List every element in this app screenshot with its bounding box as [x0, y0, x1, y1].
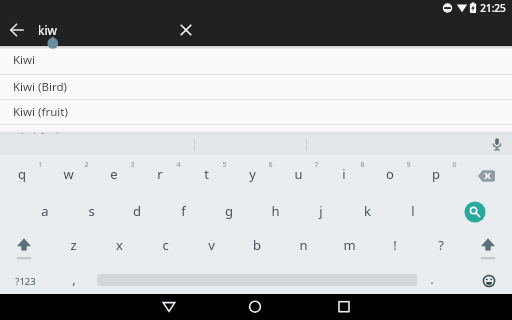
button[interactable]: [4, 17, 30, 43]
button[interactable]: [479, 271, 499, 291]
button[interactable]: [331, 294, 357, 320]
button[interactable]: q: [0, 162, 52, 186]
staticText: v: [208, 236, 215, 254]
button[interactable]: [242, 294, 268, 320]
staticText: h: [271, 202, 280, 220]
staticText: ?123: [15, 275, 36, 288]
button[interactable]: ?123: [0, 269, 55, 293]
staticText: Kiwi: [13, 52, 36, 68]
staticText: k: [364, 202, 371, 220]
button[interactable]: [468, 163, 504, 187]
button[interactable]: z: [43, 233, 103, 257]
staticText: Kiwi (Bird): [13, 79, 68, 95]
staticText: c: [162, 236, 169, 254]
staticText: s: [88, 202, 95, 220]
button[interactable]: r: [130, 162, 190, 186]
button[interactable]: [156, 294, 182, 320]
staticText: q: [18, 165, 26, 183]
button[interactable]: y: [222, 162, 282, 186]
button[interactable]: e: [84, 162, 144, 186]
staticText: p: [432, 165, 440, 183]
staticText: 3: [130, 160, 135, 170]
button[interactable]: c: [135, 233, 195, 257]
staticText: u: [294, 165, 303, 183]
button[interactable]: n: [273, 233, 333, 257]
button[interactable]: u: [268, 162, 328, 186]
staticText: 1: [38, 160, 43, 170]
staticText: 5: [222, 160, 227, 170]
button[interactable]: j: [291, 199, 351, 223]
button[interactable]: [463, 200, 487, 224]
staticText: 9: [406, 160, 411, 170]
staticText: .: [430, 270, 434, 288]
staticText: j: [319, 202, 323, 220]
button[interactable]: l: [383, 199, 443, 223]
button[interactable]: w: [38, 162, 98, 186]
button[interactable]: k: [337, 199, 397, 223]
staticText: e: [110, 165, 118, 183]
staticText: ,: [72, 270, 76, 288]
button[interactable]: t: [176, 162, 236, 186]
staticText: ?: [438, 236, 444, 254]
button[interactable]: a: [15, 199, 75, 223]
staticText: o: [386, 165, 394, 183]
staticText: y: [249, 165, 256, 183]
staticText: kiw: [38, 22, 57, 38]
staticText: x: [116, 236, 123, 254]
button[interactable]: b: [227, 233, 287, 257]
staticText: Kiwi (fruit): [13, 104, 68, 120]
staticText: t: [204, 165, 209, 183]
button[interactable]: o: [360, 162, 420, 186]
button[interactable]: h: [245, 199, 305, 223]
button[interactable]: ,: [44, 267, 104, 291]
staticText: 2: [84, 160, 89, 170]
staticText: Kiwi fruit: [13, 130, 64, 146]
staticText: 6: [268, 160, 273, 170]
staticText: 8: [360, 160, 365, 170]
button[interactable]: [0, 74, 512, 99]
button[interactable]: [11, 233, 37, 263]
staticText: w: [63, 165, 74, 183]
staticText: z: [70, 236, 77, 254]
staticText: 4: [176, 160, 181, 170]
staticText: l: [411, 202, 415, 220]
button[interactable]: .: [402, 267, 462, 291]
button[interactable]: [0, 99, 512, 124]
staticText: 7: [314, 160, 319, 170]
button[interactable]: [475, 233, 501, 263]
button[interactable]: d: [107, 199, 167, 223]
staticText: d: [133, 202, 141, 220]
staticText: f: [181, 202, 186, 220]
button[interactable]: f: [153, 199, 213, 223]
button[interactable]: [0, 46, 512, 74]
staticText: !: [393, 236, 397, 254]
staticText: n: [299, 236, 308, 254]
staticText: 0: [452, 160, 457, 170]
button[interactable]: i: [314, 162, 374, 186]
button[interactable]: s: [61, 199, 121, 223]
staticText: b: [253, 236, 261, 254]
staticText: r: [157, 165, 163, 183]
button[interactable]: p: [406, 162, 466, 186]
staticText: 21:25: [480, 1, 506, 15]
staticText: i: [342, 165, 346, 183]
staticText: m: [343, 236, 356, 254]
button[interactable]: g: [199, 199, 259, 223]
button[interactable]: x: [89, 233, 149, 257]
button[interactable]: [173, 17, 199, 43]
button[interactable]: ?: [411, 233, 471, 257]
button[interactable]: [487, 135, 507, 155]
button[interactable]: v: [181, 233, 241, 257]
button[interactable]: !: [365, 233, 425, 257]
staticText: g: [225, 202, 233, 220]
staticText: a: [41, 202, 49, 220]
button[interactable]: m: [319, 233, 379, 257]
